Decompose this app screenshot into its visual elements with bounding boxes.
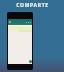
button[interactable]: Menu xyxy=(8,19,32,25)
button[interactable]: Add xyxy=(29,60,32,63)
staticText: COMPARTE xyxy=(16,2,49,9)
